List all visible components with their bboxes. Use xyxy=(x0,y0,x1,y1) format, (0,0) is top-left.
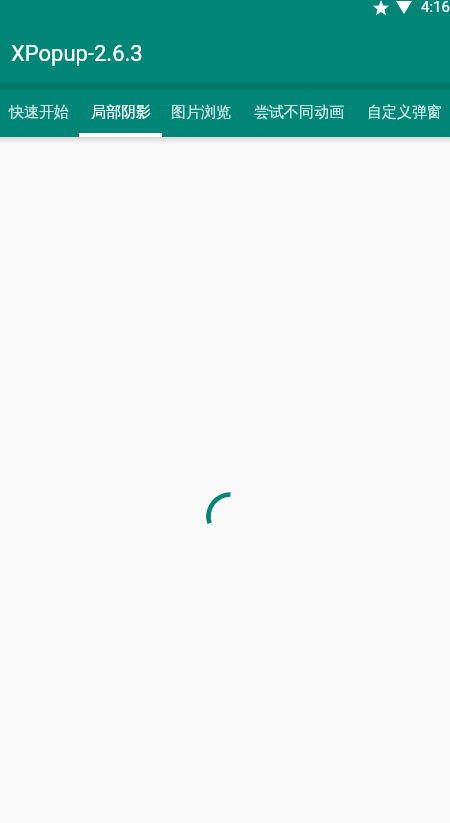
staticText: 局部阴影 xyxy=(91,103,151,122)
staticText: 图片浏览 xyxy=(171,103,231,122)
button[interactable]: 快速开始 xyxy=(0,80,78,137)
staticText: 快速开始 xyxy=(9,103,69,122)
staticText: XPopup-2.6.3 xyxy=(11,41,143,67)
button[interactable]: 图片浏览 xyxy=(163,80,238,137)
other: Loading xyxy=(0,0,450,823)
staticText: 尝试不同动画 xyxy=(254,103,344,122)
button[interactable]: 尝试不同动画 xyxy=(238,80,359,137)
staticText: 4:16 xyxy=(421,0,450,16)
button[interactable]: 自定义弹窗 xyxy=(359,80,450,137)
other: Signal strength xyxy=(396,1,412,14)
button[interactable]: 局部阴影 xyxy=(78,80,163,137)
other: Starred notification xyxy=(373,0,389,15)
staticText: 自定义弹窗 xyxy=(367,103,442,122)
